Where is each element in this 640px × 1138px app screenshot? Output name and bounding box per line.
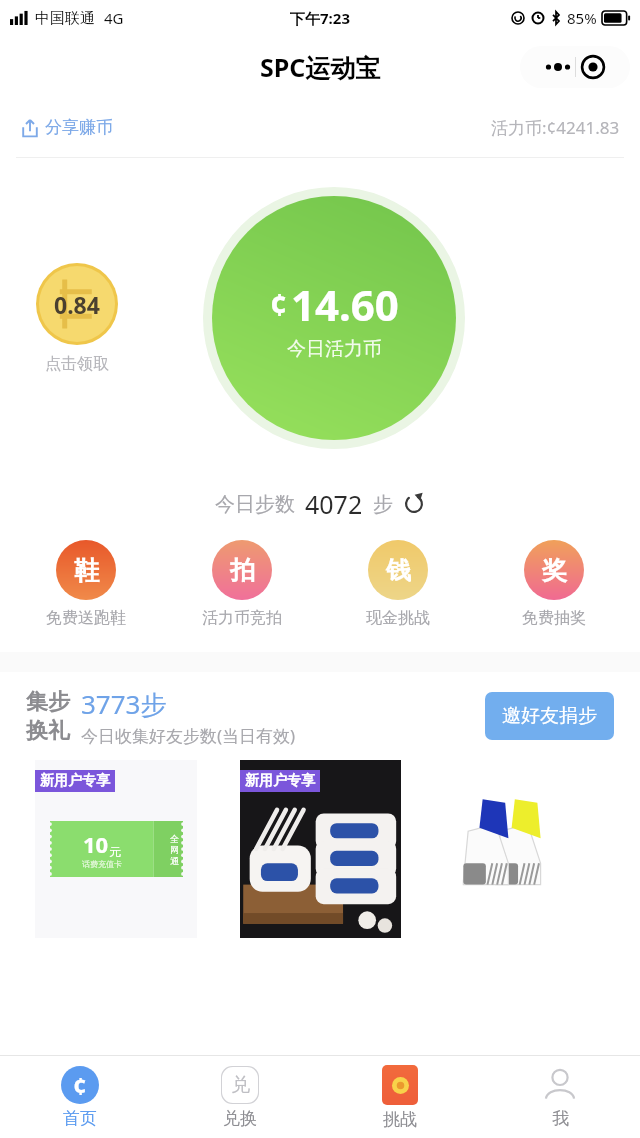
staticText: 鞋	[74, 555, 99, 586]
staticText: 今日步数	[215, 492, 295, 517]
staticText: 步	[373, 492, 393, 517]
staticText: SPC运动宝	[260, 50, 381, 84]
button[interactable]: ¢	[203, 187, 465, 449]
staticText: 挑战	[383, 1109, 417, 1130]
staticText: 分享赚币	[45, 117, 113, 138]
staticText: 活力币竞拍	[202, 608, 282, 628]
staticText: 活力币:¢4241.83	[491, 116, 620, 139]
staticText: ¢	[270, 284, 288, 325]
staticText: 钱	[386, 555, 411, 586]
button[interactable]: ¢	[0, 1056, 160, 1138]
button[interactable]: 钱	[320, 536, 476, 632]
button[interactable]: 0.84	[36, 263, 118, 345]
staticText: 首页	[63, 1108, 97, 1129]
staticText: 3773步	[81, 686, 167, 722]
staticText: 点击领取	[45, 354, 109, 374]
staticText: 中国联通	[35, 9, 95, 28]
button[interactable]: 挑战	[320, 1056, 480, 1138]
staticText: 85%	[567, 8, 597, 28]
button[interactable]: 拍	[164, 536, 320, 632]
button[interactable]: 兑	[160, 1056, 320, 1138]
staticText: 下午7:23	[290, 8, 350, 28]
staticText: 兑换	[223, 1108, 257, 1129]
button[interactable]: 奖	[476, 536, 632, 632]
staticText: 话费充值卡	[82, 859, 122, 869]
staticText: 4072	[305, 487, 363, 521]
staticText: 今日收集好友步数(当日有效)	[81, 724, 296, 747]
staticText: 网	[170, 844, 179, 855]
staticText: 4G	[104, 8, 124, 28]
staticText: 免费抽奖	[522, 608, 586, 628]
button[interactable]: 10	[35, 760, 197, 938]
staticText: 新用户专享	[245, 772, 315, 790]
button[interactable]: 邀好友捐步	[485, 692, 614, 740]
staticText: 今日活力币	[287, 337, 382, 361]
staticText: 0.84	[54, 289, 100, 320]
staticText: 14.60	[291, 276, 399, 333]
button[interactable]: 今日步数	[0, 478, 640, 530]
staticText: 免费送跑鞋	[46, 608, 126, 628]
staticText: 10	[83, 829, 109, 859]
staticText: 兑	[231, 1073, 250, 1097]
staticText: 奖	[542, 555, 567, 586]
button[interactable]: 鞋	[8, 536, 164, 632]
staticText: 新用户专享	[40, 772, 110, 790]
staticText: 我	[552, 1108, 569, 1129]
staticText: 现金挑战	[366, 608, 430, 628]
button[interactable]: 我	[480, 1056, 640, 1138]
staticText: 元	[109, 844, 121, 859]
staticText: 拍	[230, 555, 255, 586]
staticText: 集步	[26, 688, 70, 716]
button[interactable]	[444, 760, 605, 938]
staticText: ¢	[73, 1069, 87, 1102]
staticText: 通	[170, 855, 179, 866]
button[interactable]: 分享赚币	[20, 117, 113, 138]
staticText: 全	[170, 833, 179, 844]
staticText: 邀好友捐步	[502, 704, 597, 728]
button[interactable]: 新用户专享	[240, 760, 401, 938]
staticText: 换礼	[26, 717, 70, 745]
button[interactable]: More options	[520, 46, 630, 88]
